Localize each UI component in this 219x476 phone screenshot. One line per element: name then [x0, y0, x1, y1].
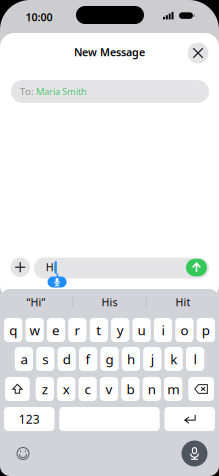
button[interactable]: u: [132, 318, 151, 342]
button[interactable]: j: [143, 347, 161, 371]
button[interactable]: q: [4, 318, 22, 342]
button[interactable]: a: [15, 347, 33, 371]
staticText: u: [138, 321, 146, 339]
staticText: w: [30, 321, 40, 339]
button[interactable]: Emoji keyboard: [16, 447, 29, 460]
button[interactable]: w: [25, 318, 44, 342]
button[interactable]: c: [78, 377, 97, 401]
staticText: Maria Smith: [36, 85, 87, 98]
staticText: To:: [20, 85, 36, 98]
button[interactable]: t: [90, 318, 108, 342]
button[interactable]: “Hi”: [0, 290, 72, 314]
staticText: k: [170, 350, 177, 368]
staticText: a: [20, 350, 27, 368]
staticText: z: [42, 380, 48, 398]
button[interactable]: Dictate: [181, 440, 207, 466]
staticText: j: [151, 350, 154, 368]
button[interactable]: o: [175, 318, 193, 342]
staticText: Hi: [46, 260, 57, 274]
staticText: 10:00: [25, 10, 52, 24]
staticText: Hit: [176, 295, 191, 309]
button[interactable]: k: [165, 347, 183, 371]
button[interactable]: z: [36, 377, 54, 401]
staticText: m: [167, 380, 179, 398]
button[interactable]: Delete: [188, 377, 214, 401]
button[interactable]: r: [68, 318, 86, 342]
button[interactable]: h: [122, 347, 140, 371]
button[interactable]: Send: [186, 259, 207, 276]
staticText: f: [86, 350, 91, 368]
button[interactable]: p: [197, 318, 215, 342]
staticText: “Hi”: [26, 295, 45, 309]
staticText: l: [194, 350, 197, 368]
button[interactable]: His: [73, 290, 146, 314]
staticText: d: [63, 350, 71, 368]
button[interactable]: Shift: [5, 377, 30, 401]
staticText: o: [180, 321, 188, 339]
staticText: v: [105, 380, 112, 398]
staticText: His: [101, 295, 117, 309]
staticText: t: [96, 321, 101, 339]
staticText: e: [52, 321, 60, 339]
button[interactable]: b: [121, 377, 139, 401]
button[interactable]: f: [79, 347, 97, 371]
button[interactable]: e: [47, 318, 65, 342]
button[interactable]: Hit: [147, 290, 219, 314]
button[interactable]: l: [186, 347, 204, 371]
staticText: x: [63, 380, 70, 398]
button[interactable]: v: [100, 377, 118, 401]
staticText: c: [85, 380, 91, 398]
staticText: i: [161, 321, 164, 339]
button[interactable]: Add attachment: [10, 257, 30, 277]
button[interactable]: g: [100, 347, 119, 371]
staticText: y: [117, 321, 124, 339]
button[interactable]: i: [154, 318, 172, 342]
button[interactable]: Close: [187, 42, 208, 63]
staticText: n: [148, 380, 156, 398]
staticText: h: [127, 350, 135, 368]
button[interactable]: y: [111, 318, 129, 342]
button[interactable]: d: [58, 347, 76, 371]
staticText: q: [9, 321, 17, 339]
staticText: r: [74, 321, 80, 339]
button[interactable]: x: [57, 377, 75, 401]
button[interactable]: [59, 407, 160, 431]
button[interactable]: n: [143, 377, 161, 401]
staticText: p: [202, 321, 210, 339]
button[interactable]: Return: [164, 407, 215, 431]
staticText: s: [42, 350, 48, 368]
staticText: 123: [19, 411, 40, 427]
staticText: b: [126, 380, 134, 398]
staticText: New Message: [74, 45, 145, 59]
staticText: g: [105, 350, 113, 368]
button[interactable]: 123: [4, 407, 54, 431]
button[interactable]: m: [164, 377, 182, 401]
button[interactable]: s: [36, 347, 54, 371]
